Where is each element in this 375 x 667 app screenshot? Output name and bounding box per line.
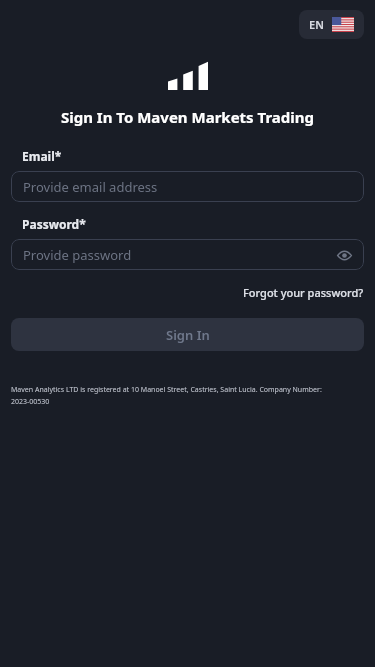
- button[interactable]: Provide email address: [11, 171, 364, 202]
- staticText: Email*: [22, 148, 62, 164]
- button[interactable]: Show password: [335, 246, 353, 264]
- staticText: Maven Analytics LTD is registered at 10 …: [11, 385, 355, 406]
- staticText: Sign In To Maven Markets Trading: [0, 107, 375, 127]
- button[interactable]: Sign In: [11, 318, 364, 351]
- button[interactable]: Provide password: [11, 239, 364, 270]
- staticText: EN: [309, 17, 324, 32]
- staticText: Provide password: [23, 246, 132, 264]
- staticText: Provide email address: [23, 178, 158, 196]
- staticText: Forgot your password?: [243, 285, 364, 300]
- button[interactable]: EN: [299, 10, 364, 39]
- staticText: Password*: [22, 216, 86, 232]
- staticText: Sign In: [166, 326, 210, 344]
- button[interactable]: Forgot your password?: [232, 282, 375, 303]
